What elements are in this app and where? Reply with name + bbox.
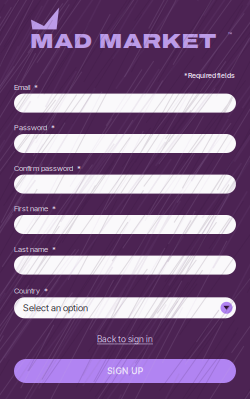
staticText: Password (14, 123, 47, 132)
button[interactable] (14, 175, 236, 194)
staticText: * (52, 244, 56, 254)
staticText: *Required fields (184, 71, 235, 80)
staticText: Select an option (23, 302, 88, 313)
staticText: First name (14, 204, 48, 213)
staticText: Back to sign in (97, 334, 153, 344)
staticText: SIGN UP (107, 366, 143, 376)
staticText: * (77, 163, 81, 173)
staticText: ™ (228, 31, 232, 39)
button[interactable] (14, 256, 236, 275)
staticText: * (44, 286, 48, 295)
staticText: Email (14, 82, 30, 92)
button[interactable] (14, 94, 236, 113)
staticText: * (51, 123, 55, 132)
staticText: Country (14, 286, 40, 295)
staticText: * (34, 82, 38, 92)
button[interactable]: Back to sign in (14, 334, 236, 344)
button[interactable]: SIGN UP (14, 359, 236, 383)
button[interactable] (14, 215, 236, 234)
staticText: MAD MARKET (30, 30, 217, 52)
staticText: Last name (14, 244, 48, 254)
button[interactable] (14, 134, 236, 153)
staticText: Confirm password (14, 163, 73, 173)
button[interactable]: Select an option (14, 297, 236, 318)
staticText: * (52, 204, 56, 213)
